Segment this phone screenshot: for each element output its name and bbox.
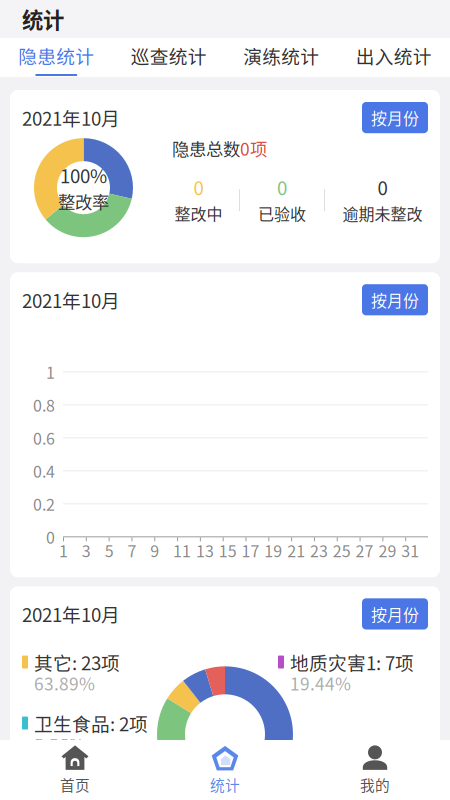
staticText: 63.89% xyxy=(34,670,95,696)
staticText: 卫生食品: 2项 xyxy=(34,709,148,736)
staticText: 0 xyxy=(193,174,203,201)
staticText: 0.2 xyxy=(33,492,55,515)
staticText: 17 xyxy=(241,539,259,562)
staticText: 隐患统计 xyxy=(18,42,94,69)
staticText: 5.56% xyxy=(34,731,85,757)
button[interactable]: 按月份 xyxy=(362,598,428,629)
button[interactable]: 演练统计 xyxy=(225,38,337,77)
button[interactable]: 统计 xyxy=(150,740,300,800)
button[interactable]: 出入统计 xyxy=(337,38,450,77)
staticText: 100% xyxy=(60,162,107,189)
staticText: 统计 xyxy=(210,774,240,795)
staticText: 我的 xyxy=(360,774,390,795)
staticText: 整改率 xyxy=(58,189,109,214)
staticText: 地质灾害1: 7项 xyxy=(290,648,414,675)
staticText: 逾期未整改 xyxy=(342,202,422,225)
staticText: 29 xyxy=(378,539,396,562)
staticText: 出入统计 xyxy=(356,42,432,69)
staticText: 0.8 xyxy=(33,393,55,416)
staticText: 5 xyxy=(105,539,114,562)
staticText: 0 xyxy=(277,174,287,201)
staticText: 按月份 xyxy=(371,602,419,625)
button[interactable]: 按月份 xyxy=(362,102,428,133)
staticText: 0 xyxy=(46,525,55,548)
staticText: 11 xyxy=(173,539,191,562)
staticText: 首页 xyxy=(60,774,90,795)
button[interactable]: 按月份 xyxy=(362,284,428,315)
staticText: 巡查统计 xyxy=(131,42,207,69)
staticText: 0 xyxy=(377,174,387,201)
staticText: 0.4 xyxy=(33,459,55,482)
staticText: 其它: 23项 xyxy=(34,648,120,675)
staticText: 统计 xyxy=(22,4,64,34)
staticText: 9 xyxy=(150,539,159,562)
staticText: 31 xyxy=(401,539,419,562)
staticText: 0.6 xyxy=(33,426,55,449)
staticText: 隐患总数 xyxy=(172,136,240,161)
staticText: 15 xyxy=(219,539,237,562)
staticText: 按月份 xyxy=(371,288,419,311)
button[interactable]: 我的 xyxy=(300,740,450,800)
button[interactable]: 首页 xyxy=(0,740,150,800)
staticText: 21 xyxy=(287,539,305,562)
staticText: 1 xyxy=(46,360,55,383)
button[interactable]: 隐患统计 xyxy=(0,38,112,77)
staticText: 19.44% xyxy=(290,670,351,696)
staticText: 1 xyxy=(59,539,68,562)
staticText: 演练统计 xyxy=(243,42,319,69)
staticText: 27 xyxy=(356,539,374,562)
staticText: 0项 xyxy=(240,136,267,161)
button[interactable]: 巡查统计 xyxy=(112,38,225,77)
staticText: 13 xyxy=(196,539,214,562)
staticText: 25 xyxy=(333,539,351,562)
staticText: 2021年10月 xyxy=(22,104,120,131)
staticText: 3 xyxy=(82,539,91,562)
staticText: 19 xyxy=(264,539,282,562)
staticText: 7 xyxy=(127,539,136,562)
staticText: 已验收 xyxy=(258,202,306,225)
staticText: 整改中 xyxy=(174,202,222,225)
staticText: 2021年10月 xyxy=(22,600,120,627)
staticText: 23 xyxy=(310,539,328,562)
staticText: 2021年10月 xyxy=(22,286,120,313)
staticText: 按月份 xyxy=(371,106,419,129)
